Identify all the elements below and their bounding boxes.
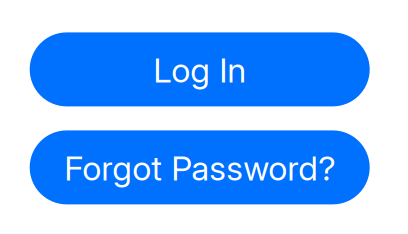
staticText: Forgot Password? [64,148,335,189]
button[interactable]: Log In [30,32,370,106]
button[interactable]: Forgot Password? [30,130,370,204]
staticText: Log In [153,50,246,91]
